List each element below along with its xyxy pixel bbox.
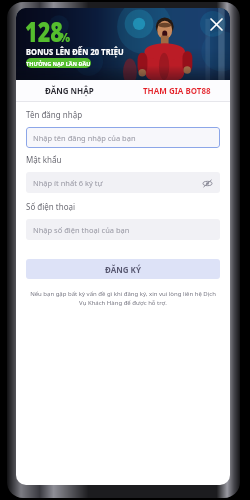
staticText: ĐĂNG NHẬP <box>45 85 94 96</box>
staticText: % <box>59 29 71 45</box>
staticText: THAM GIA BOT88 <box>143 85 211 96</box>
button[interactable]: Show password <box>201 177 213 189</box>
staticText: BONUS LÊN ĐẾN 20 TRIỆU <box>26 46 125 57</box>
staticText: 128 <box>25 12 63 50</box>
staticText: Mật khẩu <box>26 154 62 165</box>
staticText: THƯỞNG NẠP LẦN ĐẦU <box>26 60 91 67</box>
staticText: Số điện thoại <box>26 201 76 212</box>
button[interactable]: Nhập tên đăng nhập của bạn <box>26 127 220 148</box>
button[interactable]: THAM GIA BOT88 <box>123 80 230 101</box>
staticText: Nhập tên đăng nhập của bạn <box>33 133 136 143</box>
staticText: Nhập số điện thoại của bạn <box>33 225 130 235</box>
button[interactable]: Close <box>206 14 226 34</box>
staticText: Nhập ít nhất 6 ký tự <box>33 178 103 188</box>
staticText: ĐĂNG KÝ <box>105 264 141 275</box>
button[interactable]: ĐĂNG KÝ <box>26 259 220 279</box>
button[interactable]: Nhập ít nhất 6 ký tự <box>26 172 220 193</box>
button[interactable]: THƯỞNG NẠP LẦN ĐẦU <box>26 58 91 68</box>
button[interactable]: ĐĂNG NHẬP <box>16 80 123 101</box>
staticText: Nếu bạn gặp bất kỳ vấn đề gì khi đăng ký… <box>26 290 220 307</box>
staticText: Tên đăng nhập <box>26 109 83 120</box>
button[interactable]: Nhập số điện thoại của bạn <box>26 219 220 240</box>
